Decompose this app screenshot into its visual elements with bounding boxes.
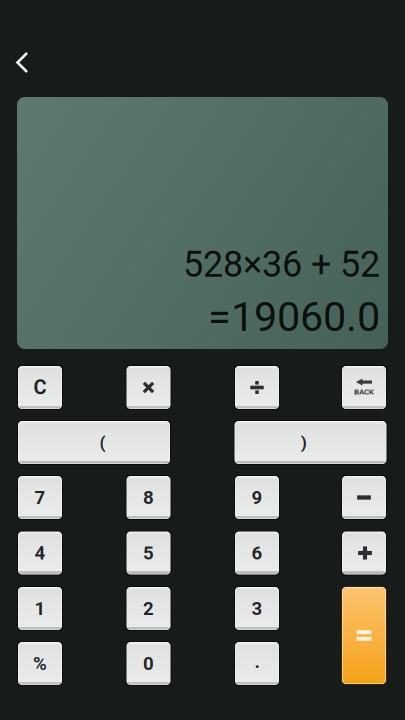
button[interactable]: 5 bbox=[125, 530, 171, 575]
button[interactable]: Minus bbox=[341, 475, 387, 520]
staticText: 0 bbox=[143, 653, 154, 674]
button[interactable]: 0 bbox=[125, 641, 171, 686]
staticText: . bbox=[254, 651, 259, 672]
staticText: 7 bbox=[34, 487, 45, 508]
staticText: 1 bbox=[34, 598, 45, 619]
staticText: 6 bbox=[251, 542, 262, 564]
button[interactable]: 9 bbox=[234, 475, 280, 520]
button[interactable]: . bbox=[234, 641, 280, 686]
staticText: ) bbox=[301, 432, 307, 453]
button[interactable]: Equals bbox=[341, 586, 387, 685]
button[interactable]: 8 bbox=[125, 475, 171, 520]
staticText: C bbox=[33, 376, 46, 399]
staticText: ( bbox=[99, 432, 105, 453]
staticText: BACK bbox=[354, 387, 374, 397]
staticText: 9 bbox=[251, 487, 262, 508]
button[interactable]: C bbox=[17, 365, 63, 410]
button[interactable]: 1 bbox=[17, 586, 63, 631]
staticText: =19060.0 bbox=[208, 293, 380, 341]
button[interactable]: 4 bbox=[17, 530, 63, 575]
staticText: 5 bbox=[143, 542, 154, 564]
button[interactable]: Plus bbox=[341, 530, 387, 575]
staticText: 8 bbox=[143, 487, 154, 508]
staticText: 4 bbox=[34, 542, 45, 564]
button[interactable]: 6 bbox=[234, 530, 280, 575]
button[interactable]: ) bbox=[233, 420, 387, 465]
staticText: 3 bbox=[251, 598, 262, 619]
button[interactable]: Back bbox=[0, 44, 54, 81]
button[interactable]: Backspace bbox=[341, 365, 387, 410]
button[interactable]: 2 bbox=[125, 586, 171, 631]
button[interactable]: ( bbox=[17, 420, 171, 465]
button[interactable]: 7 bbox=[17, 475, 63, 520]
button[interactable]: % bbox=[17, 641, 63, 686]
button[interactable]: Divide bbox=[234, 365, 280, 410]
staticText: % bbox=[33, 653, 47, 674]
button[interactable]: 3 bbox=[234, 586, 280, 631]
staticText: 528×36 + 52 bbox=[183, 243, 380, 286]
button[interactable]: Multiply bbox=[125, 365, 171, 410]
staticText: 2 bbox=[143, 598, 154, 619]
